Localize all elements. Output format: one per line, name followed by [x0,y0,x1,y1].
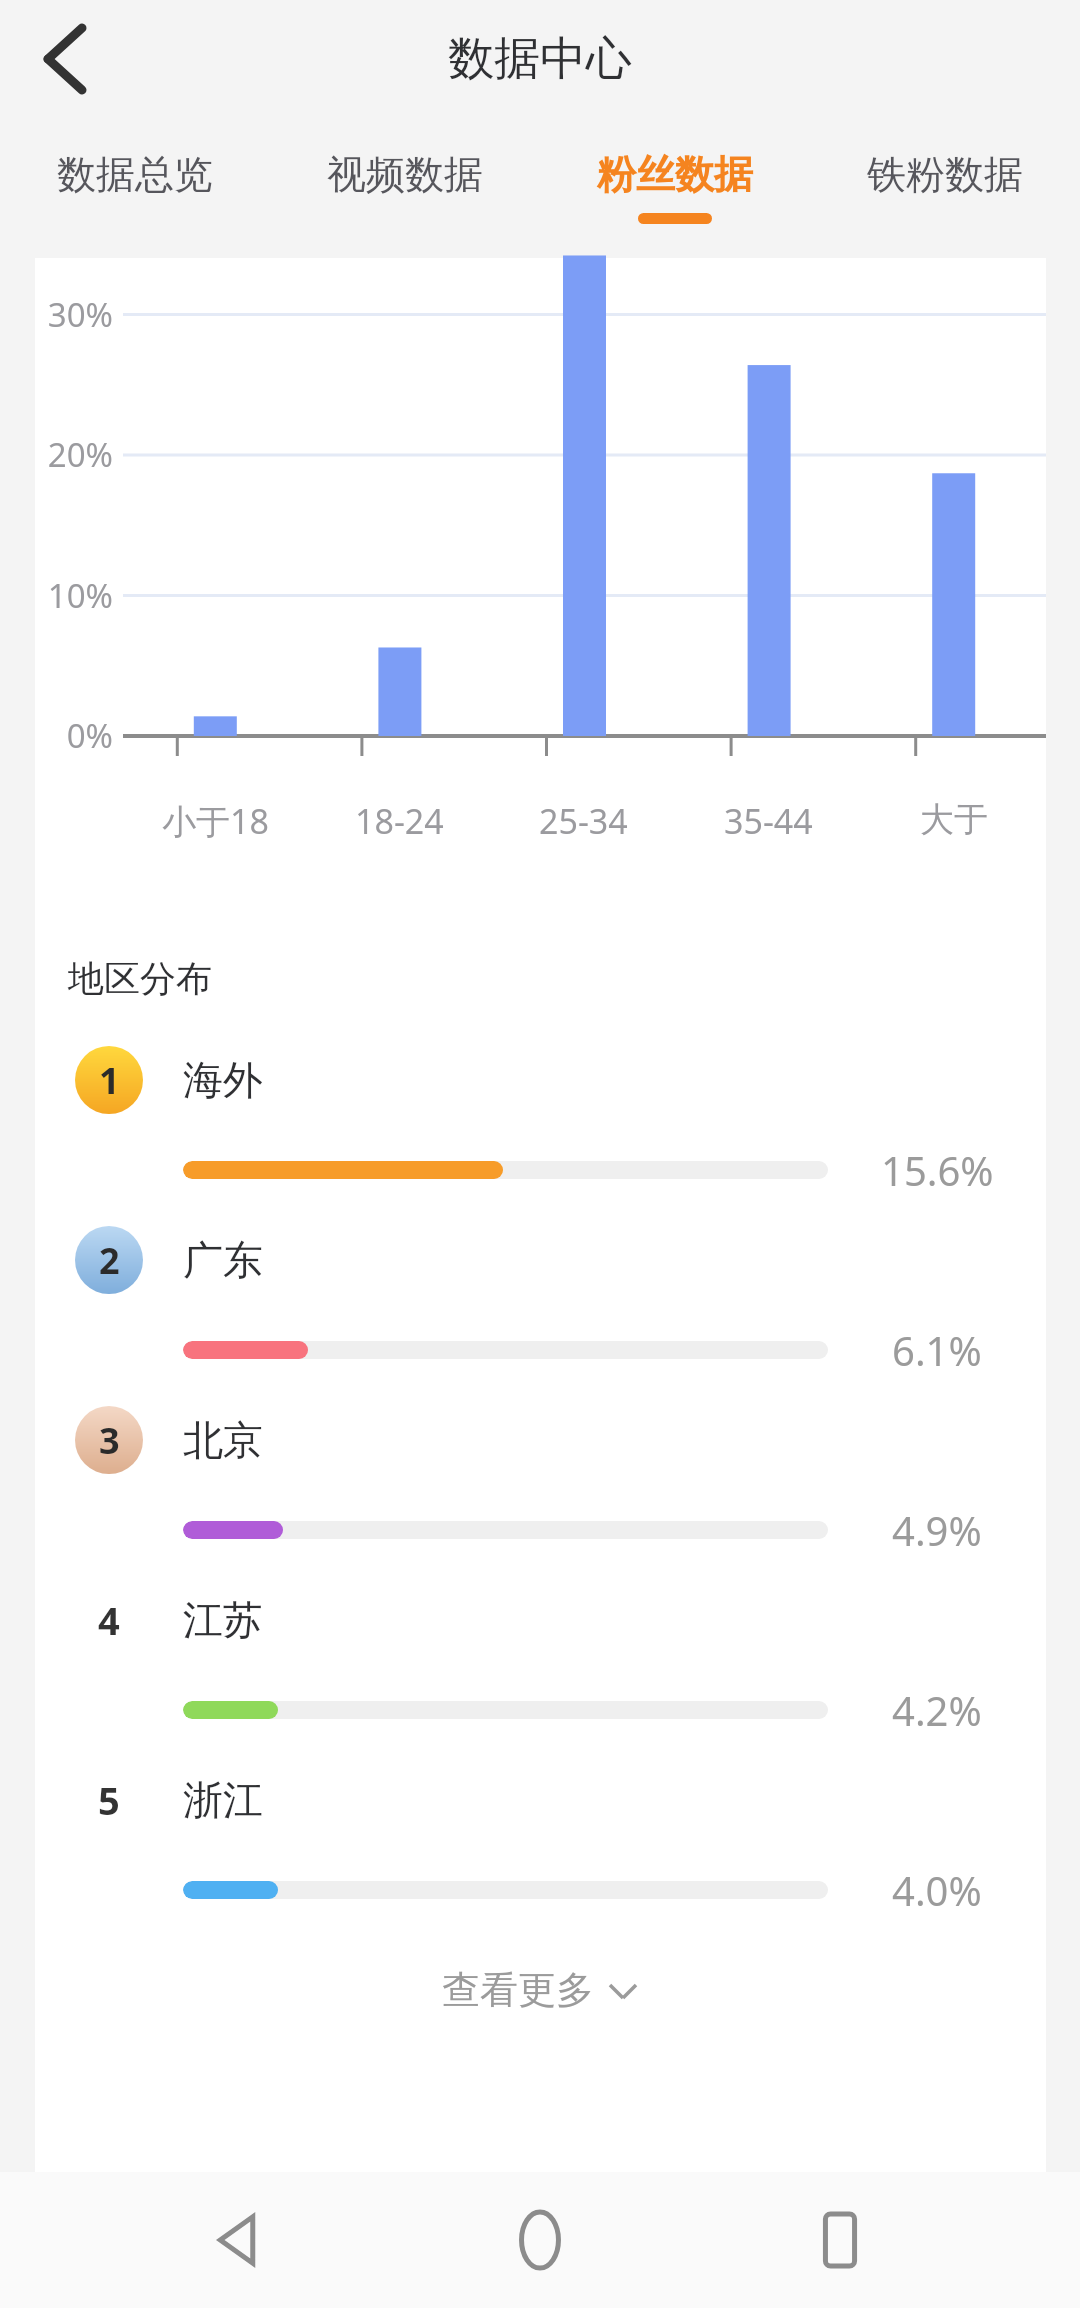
button[interactable]: 3 [35,1391,1046,1571]
staticText: 30% [35,292,113,337]
staticText: 海外 [183,1055,263,1105]
staticText: 6.1% [892,1323,982,1377]
staticText: 数据中心 [448,30,632,88]
staticText: 铁粉数据 [867,150,1023,199]
staticText: 广东 [183,1235,263,1285]
staticText: 4 [98,1594,120,1646]
staticText: 5 [98,1774,120,1826]
staticText: 18-24 [355,798,444,844]
staticText: 视频数据 [327,150,483,199]
button[interactable]: 2 [35,1211,1046,1391]
button[interactable]: Back [180,2180,300,2300]
staticText: 大于 [920,798,988,841]
button[interactable]: 5 [35,1751,1046,1931]
staticText: 3 [99,1416,120,1465]
staticText: 4.2% [892,1683,982,1737]
staticText: 15.6% [881,1143,994,1197]
button[interactable]: 粉丝数据 [540,118,810,248]
staticText: 数据总览 [57,150,213,199]
staticText: 0% [35,713,113,758]
button[interactable]: 数据总览 [0,118,270,248]
staticText: 10% [35,573,113,618]
staticText: 江苏 [183,1595,263,1645]
staticText: 地区分布 [68,956,212,1001]
button[interactable]: 查看更多 [35,1931,1046,2049]
button[interactable]: Back [14,7,118,111]
staticText: 2 [99,1236,120,1285]
staticText: 25-34 [539,798,628,844]
staticText: 1 [99,1056,120,1105]
staticText: 20% [35,432,113,477]
button[interactable]: 视频数据 [270,118,540,248]
staticText: 4.0% [892,1863,982,1917]
staticText: 北京 [183,1415,263,1465]
button[interactable]: Recents [780,2180,900,2300]
staticText: 小于18 [162,798,269,844]
staticText: 查看更多 [442,1966,594,2014]
staticText: 4.9% [892,1503,982,1557]
button[interactable]: 4 [35,1571,1046,1751]
button[interactable]: 1 [35,1031,1046,1211]
staticText: 粉丝数据 [597,150,753,199]
staticText: 浙江 [183,1775,263,1825]
button[interactable]: Home [480,2180,600,2300]
staticText: 35-44 [724,798,813,844]
button[interactable]: 铁粉数据 [810,118,1080,248]
